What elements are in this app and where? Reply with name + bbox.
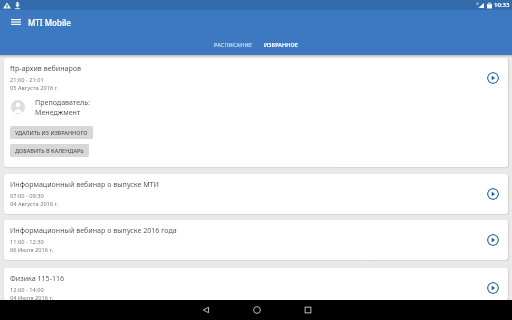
staticText: РАСПИСАНИЕ: [214, 41, 252, 48]
staticText: 11:00 - 12:30: [10, 238, 44, 246]
button[interactable]: Play webinar: [487, 234, 499, 246]
button[interactable]: Play webinar: [487, 72, 499, 84]
staticText: ftp-архив вебинаров: [10, 63, 82, 73]
staticText: УДАЛИТЬ ИЗ ИЗБРАННОГО: [15, 129, 88, 136]
staticText: 21:00 - 21:01: [10, 76, 44, 84]
button[interactable]: Физика 115-116: [4, 268, 508, 300]
staticText: 05 Августа 2016 г.: [10, 84, 59, 92]
button[interactable]: Recent apps: [282, 300, 333, 320]
button[interactable]: РАСПИСАНИЕ: [208, 37, 258, 52]
staticText: MTI Mobile: [28, 17, 71, 28]
staticText: 04 Июля 2016 г.: [10, 294, 54, 300]
button[interactable]: ИЗБРАННОЕ: [258, 37, 304, 52]
staticText: ИЗБРАННОЕ: [264, 41, 298, 48]
button[interactable]: Play webinar: [487, 188, 499, 200]
button[interactable]: Play webinar: [487, 282, 499, 294]
staticText: 10:33: [494, 1, 510, 9]
button[interactable]: ftp-архив вебинаров: [4, 58, 508, 167]
staticText: 12:00 - 14:00: [10, 286, 44, 294]
staticText: Физика 115-116: [10, 273, 65, 283]
button[interactable]: Back: [180, 300, 231, 320]
button[interactable]: Open navigation menu: [0, 10, 32, 34]
staticText: ДОБАВИТЬ В КАЛЕНДАРЬ: [15, 147, 84, 154]
staticText: 04 Августа 2016 г.: [10, 200, 59, 208]
staticText: Информационный вебинар о выпуске 2016 го…: [10, 225, 177, 235]
button[interactable]: Информационный вебинар о выпуске 2016 го…: [4, 220, 508, 260]
button[interactable]: Home: [231, 300, 282, 320]
staticText: Менеджмент: [35, 107, 81, 117]
staticText: 06 Июля 2016 г.: [10, 246, 54, 254]
button[interactable]: ДОБАВИТЬ В КАЛЕНДАРЬ: [10, 144, 89, 157]
staticText: Информационный вебинар о выпуске МТИ: [10, 179, 159, 189]
staticText: 07:00 - 09:30: [10, 192, 44, 200]
staticText: Преподаватель:: [35, 97, 90, 107]
button[interactable]: Информационный вебинар о выпуске МТИ: [4, 174, 508, 214]
button[interactable]: УДАЛИТЬ ИЗ ИЗБРАННОГО: [10, 126, 93, 139]
